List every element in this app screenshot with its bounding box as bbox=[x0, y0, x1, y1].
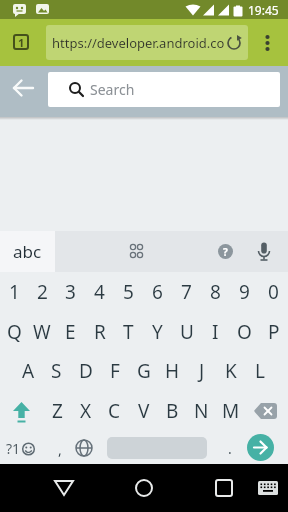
button[interactable]: 2 bbox=[28, 272, 56, 312]
button[interactable]: 0 bbox=[259, 272, 288, 312]
button[interactable]: G bbox=[129, 352, 158, 390]
button[interactable]: U bbox=[172, 312, 201, 352]
button[interactable] bbox=[48, 474, 80, 502]
staticText: P bbox=[268, 319, 280, 345]
staticText: B bbox=[166, 398, 179, 424]
staticText: U bbox=[180, 319, 194, 345]
button[interactable]: Y bbox=[143, 312, 172, 352]
button[interactable]: 3 bbox=[56, 272, 85, 312]
button[interactable]: J bbox=[187, 352, 216, 390]
staticText: 3 bbox=[65, 279, 76, 305]
staticText: F bbox=[110, 358, 120, 384]
staticText: 2 bbox=[37, 279, 48, 305]
button[interactable]: R bbox=[85, 312, 114, 352]
button[interactable]: C bbox=[100, 390, 129, 432]
staticText: https://developer.android.co bbox=[52, 34, 224, 52]
button[interactable]: 1 bbox=[13, 34, 29, 50]
button[interactable]: 8 bbox=[201, 272, 230, 312]
button[interactable] bbox=[128, 474, 160, 502]
staticText: X bbox=[80, 398, 92, 424]
staticText: G bbox=[137, 358, 151, 384]
button[interactable]: ? bbox=[218, 244, 233, 259]
staticText: H bbox=[165, 358, 180, 384]
button[interactable]: F bbox=[100, 352, 129, 390]
button[interactable] bbox=[208, 474, 240, 502]
button[interactable]: H bbox=[158, 352, 187, 390]
staticText: C bbox=[108, 398, 121, 424]
staticText: Y bbox=[152, 319, 163, 345]
staticText: V bbox=[138, 398, 150, 424]
button[interactable]: abc bbox=[0, 231, 55, 272]
staticText: , bbox=[58, 440, 62, 459]
staticText: Z bbox=[52, 398, 63, 424]
button[interactable]: A bbox=[14, 352, 42, 390]
button[interactable]: 4 bbox=[85, 272, 114, 312]
staticText: W bbox=[33, 319, 51, 345]
button[interactable]: 7 bbox=[172, 272, 201, 312]
staticText: E bbox=[65, 319, 76, 345]
staticText: N bbox=[194, 398, 209, 424]
button[interactable]: Search bbox=[48, 72, 280, 107]
button[interactable]: X bbox=[71, 390, 100, 432]
staticText: 1 bbox=[18, 35, 25, 50]
button[interactable]: N bbox=[187, 390, 216, 432]
staticText: J bbox=[199, 358, 205, 384]
staticText: ?1 bbox=[6, 439, 21, 458]
button[interactable] bbox=[255, 476, 283, 500]
button[interactable]: E bbox=[56, 312, 85, 352]
staticText: O bbox=[237, 319, 252, 345]
button[interactable]: D bbox=[71, 352, 100, 390]
button[interactable]: B bbox=[158, 390, 187, 432]
staticText: Search bbox=[90, 80, 135, 99]
staticText: K bbox=[225, 358, 237, 384]
button[interactable]: T bbox=[114, 312, 143, 352]
staticText: Q bbox=[7, 319, 22, 345]
staticText: 8 bbox=[210, 279, 221, 305]
staticText: 0 bbox=[268, 279, 279, 305]
button[interactable] bbox=[0, 390, 43, 432]
button[interactable]: W bbox=[28, 312, 56, 352]
button[interactable]: V bbox=[129, 390, 158, 432]
staticText: 5 bbox=[123, 279, 134, 305]
staticText: 4 bbox=[94, 279, 105, 305]
button[interactable]: L bbox=[245, 352, 274, 390]
staticText: 1 bbox=[9, 279, 20, 305]
staticText: 19:45 bbox=[248, 2, 279, 18]
button[interactable]: ?1 bbox=[6, 432, 36, 464]
button[interactable] bbox=[8, 74, 42, 108]
staticText: S bbox=[51, 358, 62, 384]
button[interactable]: I bbox=[201, 312, 230, 352]
staticText: abc bbox=[13, 240, 42, 263]
button[interactable]: O bbox=[230, 312, 259, 352]
button[interactable]: S bbox=[42, 352, 71, 390]
staticText: ? bbox=[223, 245, 228, 259]
button[interactable]: 5 bbox=[114, 272, 143, 312]
staticText: L bbox=[255, 358, 265, 384]
staticText: 9 bbox=[239, 279, 250, 305]
staticText: 7 bbox=[181, 279, 192, 305]
button[interactable]: https://developer.android.co bbox=[46, 25, 248, 60]
staticText: M bbox=[222, 398, 240, 424]
staticText: I bbox=[212, 319, 219, 345]
staticText: . bbox=[228, 439, 232, 458]
button[interactable] bbox=[245, 390, 288, 432]
button[interactable]: M bbox=[216, 390, 245, 432]
button[interactable] bbox=[73, 437, 95, 459]
staticText: D bbox=[79, 358, 93, 384]
button[interactable]: 1 bbox=[0, 272, 28, 312]
staticText: A bbox=[22, 358, 35, 384]
button[interactable] bbox=[253, 241, 275, 263]
staticText: R bbox=[94, 319, 106, 345]
button[interactable]: 6 bbox=[143, 272, 172, 312]
button[interactable]: K bbox=[216, 352, 245, 390]
button[interactable]: 9 bbox=[230, 272, 259, 312]
button[interactable] bbox=[258, 27, 278, 59]
button[interactable]: Q bbox=[0, 312, 28, 352]
staticText: T bbox=[123, 319, 134, 345]
button[interactable]: Z bbox=[43, 390, 71, 432]
staticText: 6 bbox=[152, 279, 163, 305]
button[interactable]: P bbox=[259, 312, 288, 352]
button[interactable] bbox=[247, 434, 274, 461]
